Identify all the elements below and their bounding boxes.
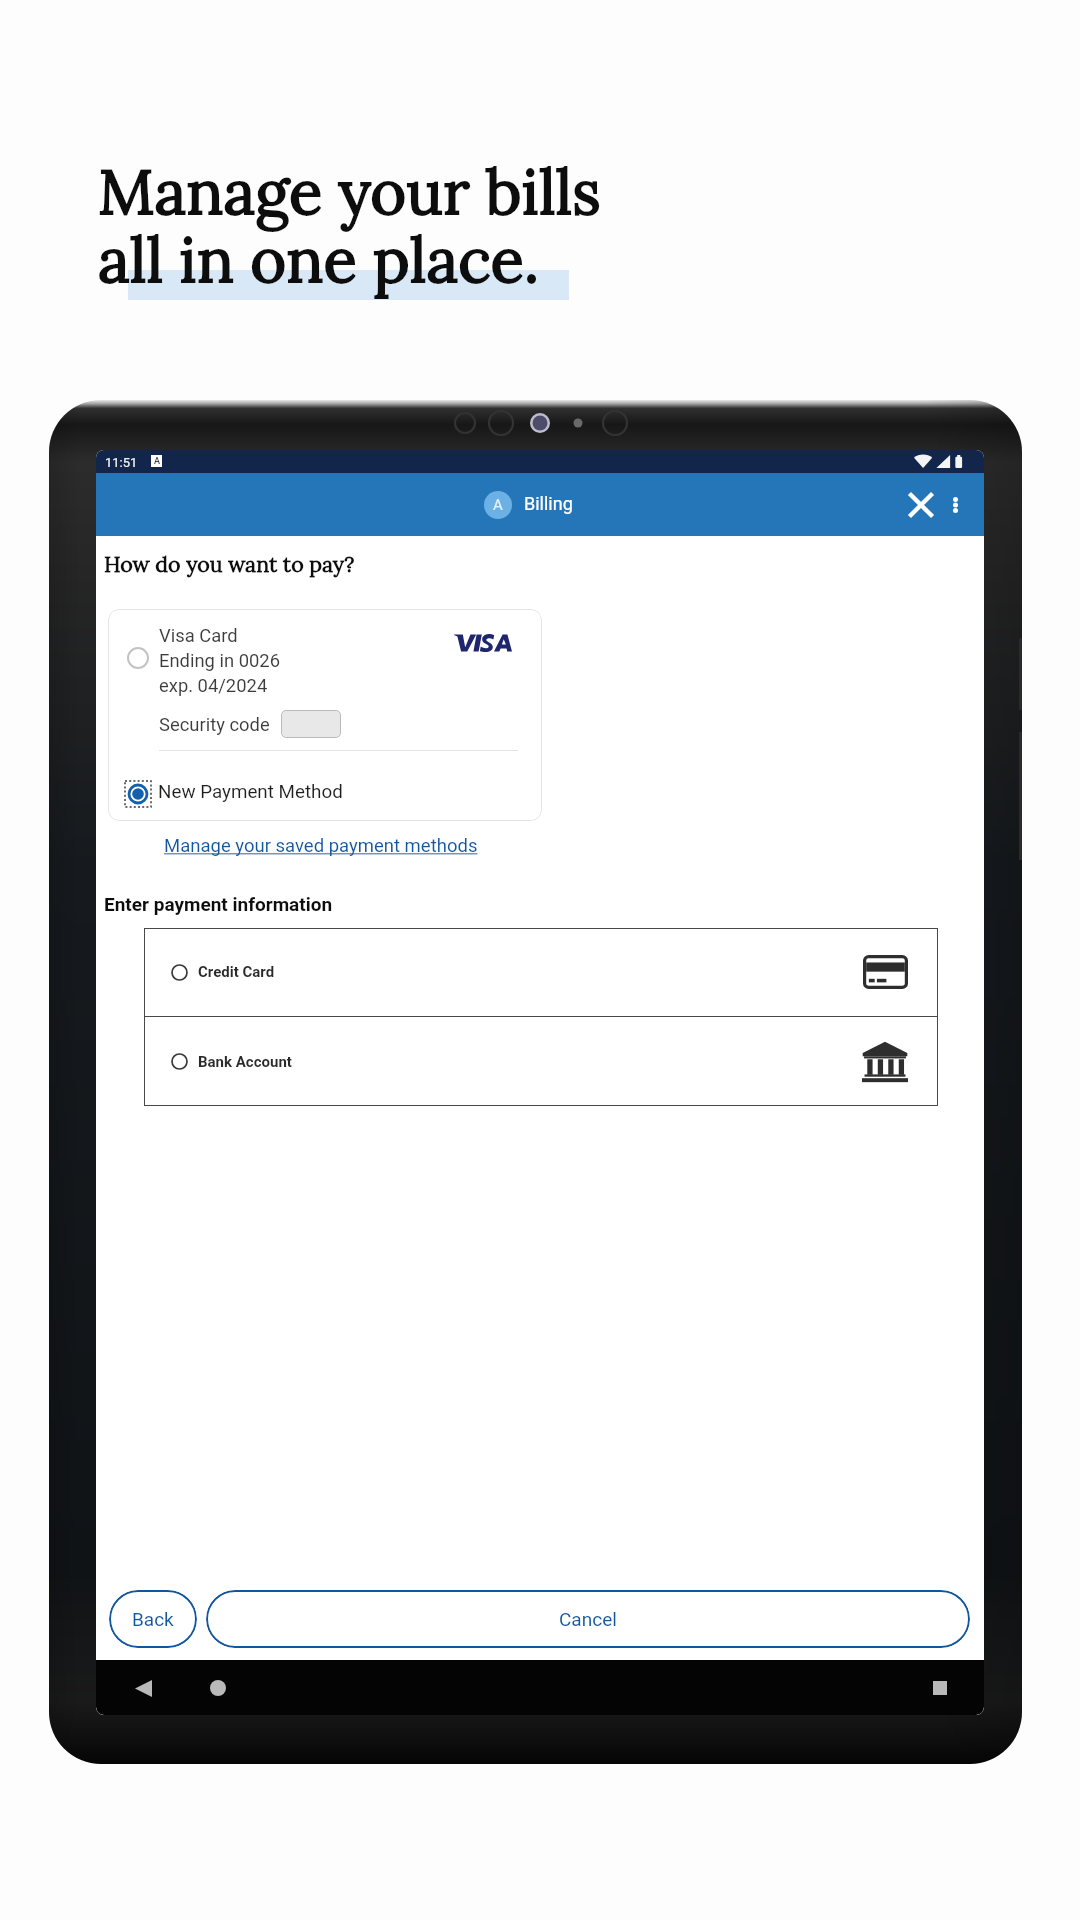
staticText: Credit Card (198, 963, 275, 981)
button[interactable]: Close (899, 483, 943, 527)
staticText: Back (132, 1608, 174, 1630)
staticText: Security code (159, 714, 270, 736)
staticText: Billing (524, 493, 573, 514)
button[interactable]: Cancel (206, 1590, 970, 1648)
button[interactable]: Bank Account (144, 1017, 938, 1106)
staticText: A (493, 496, 503, 514)
button[interactable]: Back (109, 1590, 197, 1648)
button[interactable]: Recent apps (918, 1666, 962, 1710)
button[interactable]: Back (121, 1666, 165, 1710)
staticText: A (154, 456, 160, 467)
staticText: Cancel (559, 1608, 617, 1630)
staticText: Visa Card (159, 625, 238, 647)
button[interactable]: Manage your saved payment methods (164, 835, 478, 857)
button[interactable]: Home (196, 1666, 240, 1710)
staticText: Ending in 0026 (159, 650, 281, 672)
button[interactable]: More options (937, 487, 973, 523)
staticText: exp. 04/2024 (159, 675, 268, 697)
button[interactable]: New Payment Method (116, 772, 301, 798)
button[interactable]: Credit Card (144, 928, 938, 1016)
button[interactable] (281, 710, 341, 738)
staticText: 11:51 (105, 455, 138, 470)
staticText: New Payment Method (158, 781, 343, 803)
staticText: all in one place. (98, 220, 540, 299)
staticText: Enter payment information (104, 893, 333, 915)
staticText: Bank Account (198, 1053, 292, 1071)
staticText: How do you want to pay? (104, 550, 355, 577)
staticText: Manage your bills (98, 152, 601, 231)
